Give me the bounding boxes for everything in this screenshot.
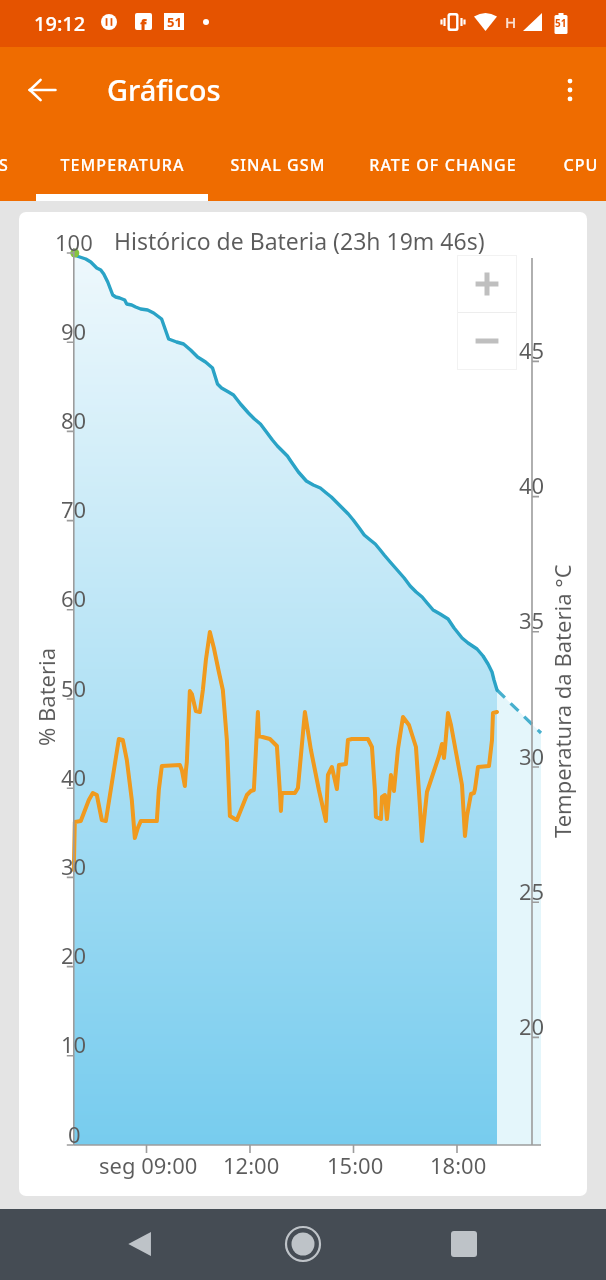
button[interactable]: TEMPERATURA	[36, 130, 208, 199]
button[interactable]: Home	[271, 1212, 335, 1276]
staticText: 60	[61, 583, 87, 613]
staticText: Temperatura da Bateria °C	[547, 564, 577, 838]
staticText: 30	[519, 741, 545, 771]
staticText: % Bateria	[31, 647, 61, 746]
staticText: 12:00	[223, 1150, 280, 1180]
staticText: 51	[167, 13, 182, 30]
button[interactable]: Recents	[432, 1212, 496, 1276]
button[interactable]: CPU	[546, 130, 606, 199]
staticText: 80	[61, 405, 87, 435]
staticText: 18:00	[430, 1150, 487, 1180]
staticText: 90	[61, 316, 87, 346]
staticText: 40	[519, 470, 545, 500]
button[interactable]: Back	[18, 66, 66, 114]
button[interactable]: S	[0, 130, 24, 199]
staticText: 50	[61, 673, 87, 703]
staticText: 35	[519, 605, 545, 635]
staticText: f	[140, 14, 147, 30]
staticText: S	[0, 154, 9, 176]
staticText: 70	[61, 494, 87, 524]
staticText: SINAL GSM	[230, 154, 326, 176]
button[interactable]: Back	[108, 1212, 172, 1276]
button[interactable]: SINAL GSM	[210, 130, 345, 199]
staticText: 25	[519, 876, 545, 906]
staticText: 20	[519, 1011, 545, 1041]
staticText: RATE OF CHANGE	[369, 154, 517, 176]
staticText: CPU	[563, 154, 599, 176]
button[interactable]: More options	[546, 66, 594, 114]
staticText: 100	[55, 227, 93, 257]
staticText: 30	[61, 851, 87, 881]
staticText: Gráficos	[107, 70, 221, 109]
staticText: 10	[61, 1029, 87, 1059]
staticText: 45	[519, 335, 545, 365]
staticText: 15:00	[327, 1150, 384, 1180]
button[interactable]: RATE OF CHANGE	[348, 130, 538, 199]
staticText: Histórico de Bateria (23h 19m 46s)	[114, 225, 485, 256]
staticText: 19:12	[34, 10, 86, 37]
button[interactable]: Zoom out	[458, 313, 516, 369]
staticText: 0	[68, 1119, 81, 1149]
staticText: TEMPERATURA	[60, 154, 185, 176]
staticText: seg 09:00	[99, 1150, 198, 1180]
staticText: H	[505, 12, 517, 32]
staticText: 40	[61, 762, 87, 792]
button[interactable]: Zoom in	[458, 256, 516, 312]
staticText: 51	[555, 16, 567, 30]
staticText: 20	[61, 940, 87, 970]
